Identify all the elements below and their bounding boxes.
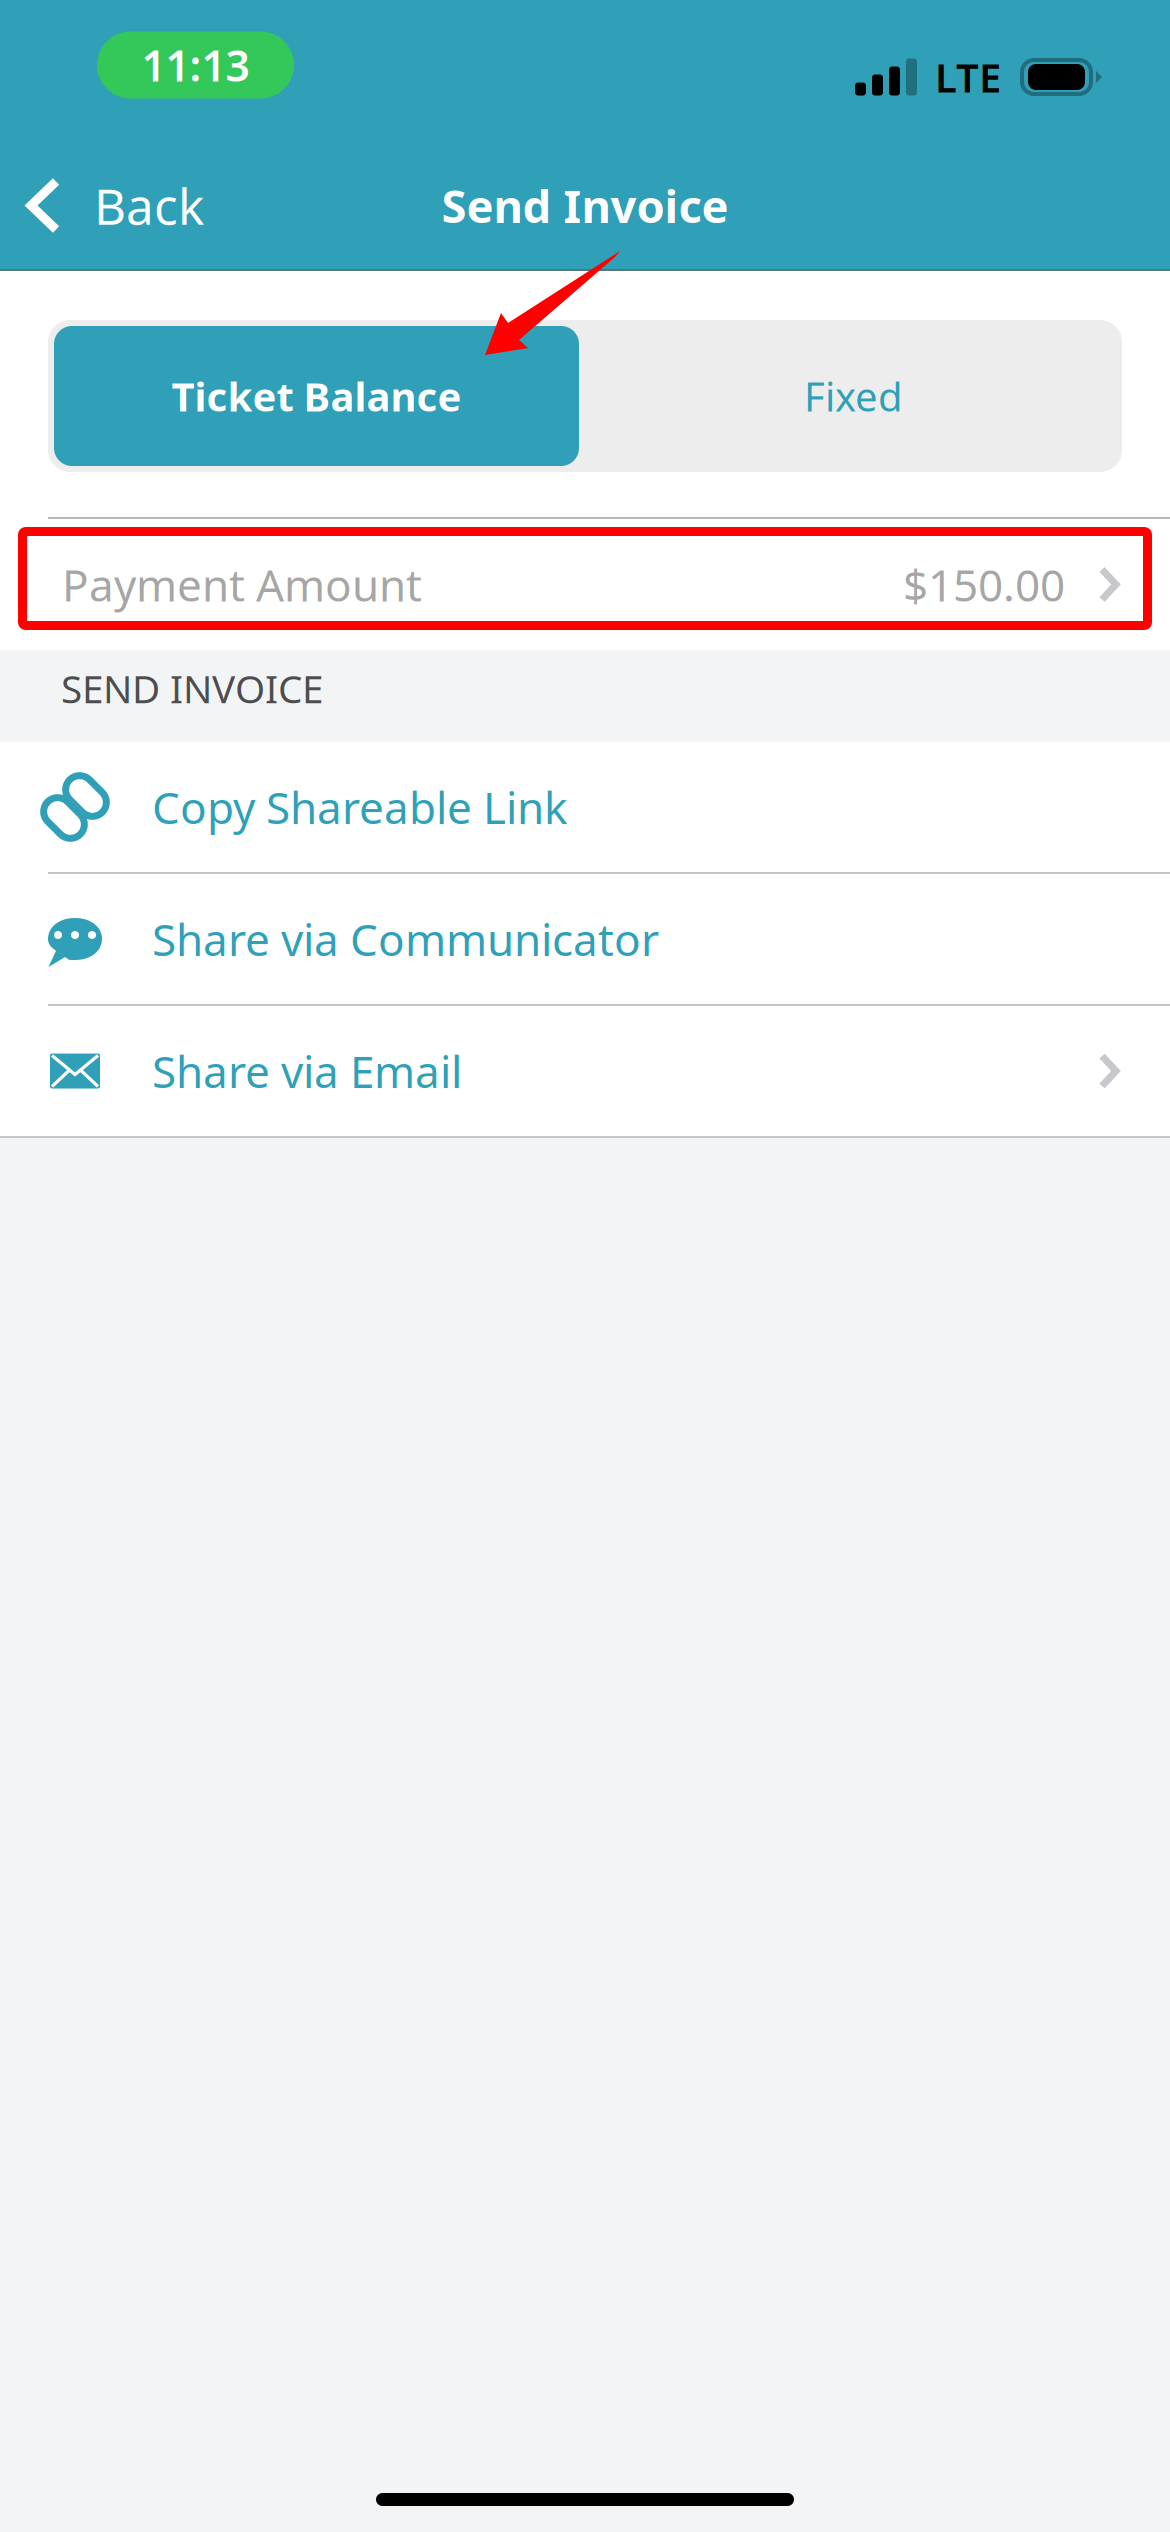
staticText: $150.00	[903, 555, 1065, 614]
staticText: 11:13	[141, 37, 249, 93]
staticText: Send Invoice	[441, 175, 728, 236]
staticText: Share via Communicator	[152, 910, 659, 968]
button[interactable]: Ticket Balance	[48, 320, 585, 472]
button[interactable]: Copy Shareable Link	[0, 742, 1170, 872]
staticText: Share via Email	[152, 1042, 462, 1100]
staticText: SEND INVOICE	[61, 663, 323, 714]
button[interactable]: Share via Communicator	[0, 874, 1170, 1004]
staticText: Payment Amount	[62, 555, 422, 614]
button[interactable]: Fixed	[585, 320, 1122, 472]
staticText: Copy Shareable Link	[152, 778, 567, 836]
staticText: Ticket Balance	[171, 369, 461, 422]
button[interactable]: Payment Amount	[0, 519, 1170, 650]
button[interactable]: Back	[0, 157, 204, 254]
staticText: LTE	[935, 50, 1001, 103]
staticText: Back	[94, 173, 204, 238]
button[interactable]: Share via Email	[0, 1006, 1170, 1136]
staticText: Fixed	[804, 369, 903, 422]
